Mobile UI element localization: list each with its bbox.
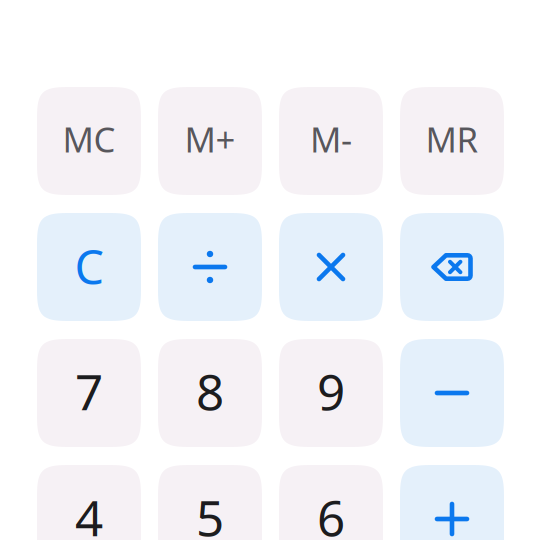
- button[interactable]: 4: [37, 465, 141, 540]
- staticText: 9: [317, 358, 345, 424]
- button[interactable]: 5: [158, 465, 262, 540]
- staticText: C: [74, 235, 103, 297]
- button[interactable]: Minus: [400, 339, 504, 447]
- button[interactable]: 9: [279, 339, 383, 447]
- button[interactable]: 6: [279, 465, 383, 540]
- staticText: 6: [317, 484, 345, 540]
- button[interactable]: 7: [37, 339, 141, 447]
- button[interactable]: M-: [279, 87, 383, 195]
- button[interactable]: Multiply: [279, 213, 383, 321]
- staticText: 7: [75, 358, 103, 424]
- button[interactable]: MC: [37, 87, 141, 195]
- staticText: M+: [184, 116, 235, 162]
- staticText: 8: [196, 358, 224, 424]
- staticText: M-: [310, 116, 352, 162]
- button[interactable]: Divide: [158, 213, 262, 321]
- staticText: 5: [196, 484, 224, 540]
- button[interactable]: MR: [400, 87, 504, 195]
- staticText: MC: [62, 116, 115, 162]
- button[interactable]: C: [37, 213, 141, 321]
- button[interactable]: Plus: [400, 465, 504, 540]
- staticText: MR: [425, 116, 478, 162]
- button[interactable]: M+: [158, 87, 262, 195]
- button[interactable]: Delete: [400, 213, 504, 321]
- button[interactable]: 8: [158, 339, 262, 447]
- staticText: 4: [75, 484, 103, 540]
